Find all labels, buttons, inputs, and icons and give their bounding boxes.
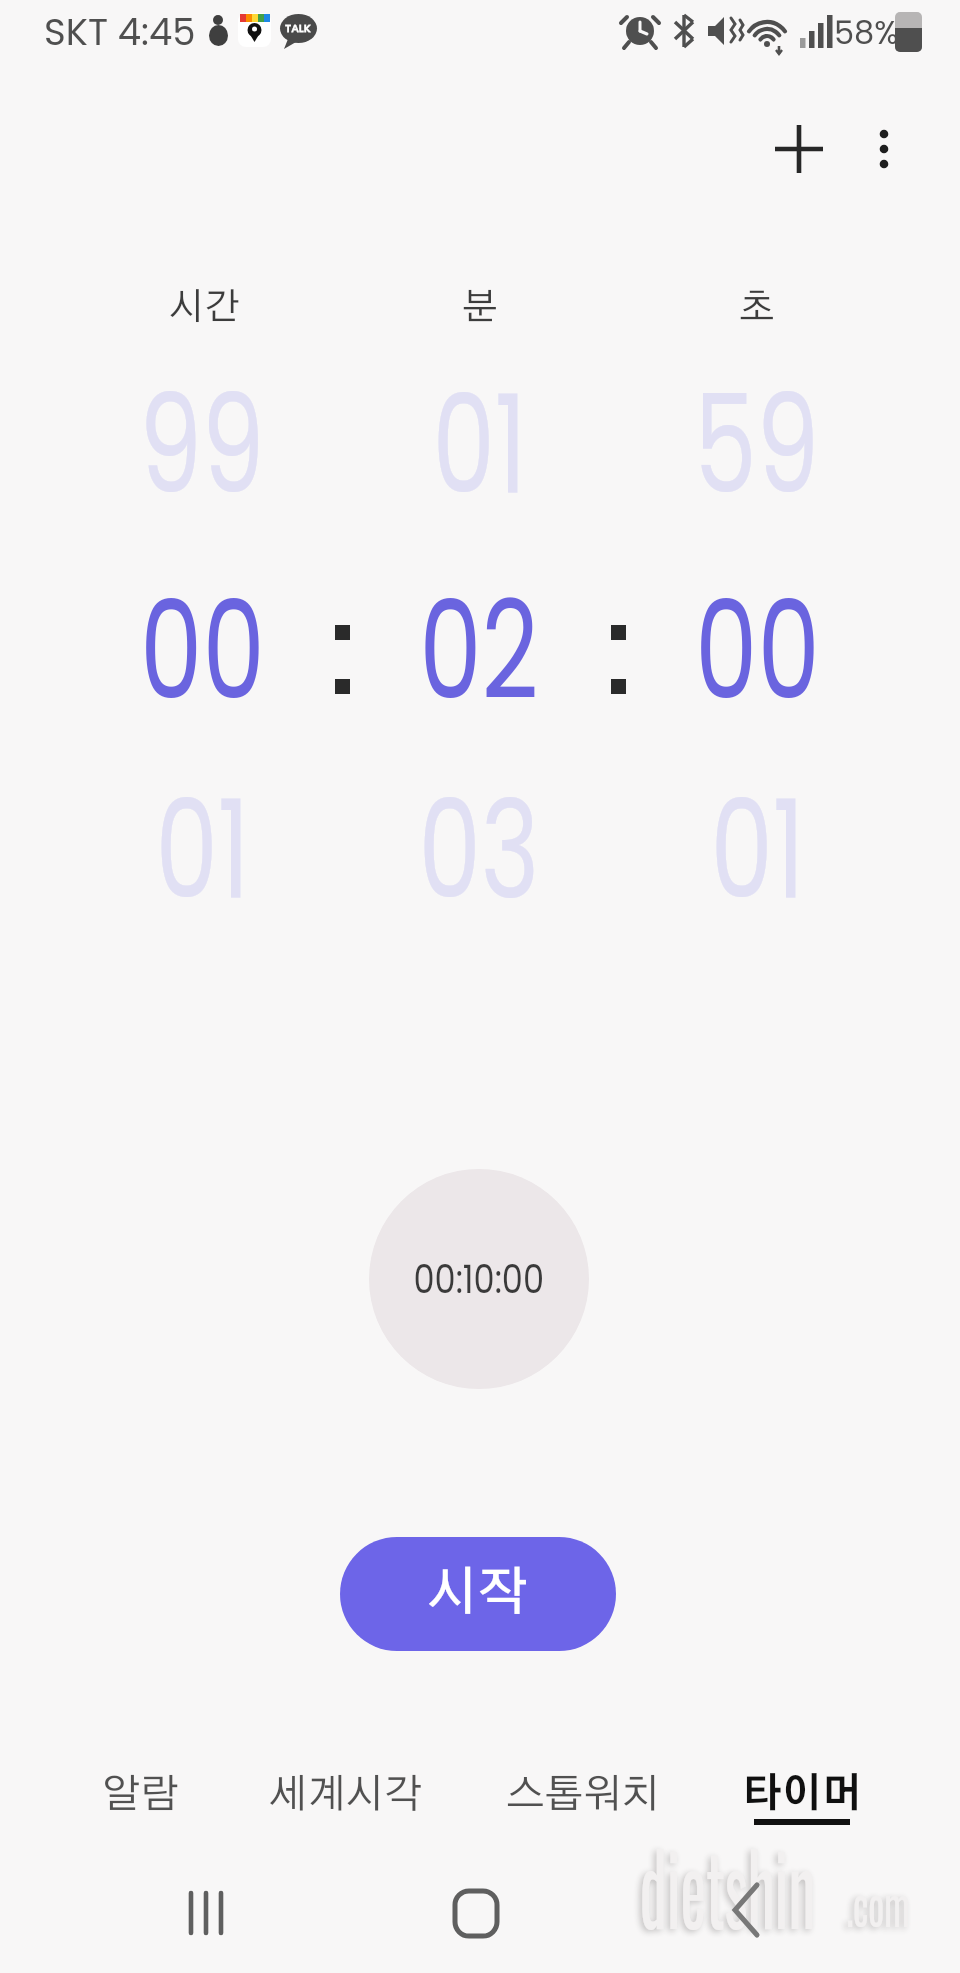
staticText: 시작 <box>427 1568 529 1620</box>
staticText: 00:10:00 <box>413 1251 544 1307</box>
staticText: 01 <box>710 754 805 944</box>
staticText: 타이머 <box>742 1775 862 1815</box>
staticText: 01 <box>155 754 250 944</box>
staticText: TALK <box>285 20 311 35</box>
staticText: dietshin <box>640 1812 815 1957</box>
button[interactable]: 스톱워치 <box>473 1750 693 1840</box>
staticText: 시간 <box>169 289 241 326</box>
button[interactable] <box>844 109 924 189</box>
button[interactable] <box>151 1868 261 1958</box>
button[interactable]: 00 <box>112 555 292 745</box>
button[interactable]: 시작 <box>340 1537 616 1651</box>
staticText: .com <box>846 1865 910 1942</box>
staticText: 알람 <box>102 1775 179 1815</box>
button[interactable]: 02 <box>389 555 569 745</box>
button[interactable]: 세계시각 <box>236 1750 456 1840</box>
button[interactable]: 알람 <box>30 1750 250 1840</box>
staticText: SKT 4:45 <box>44 6 196 58</box>
staticText: 58% <box>834 10 899 55</box>
button[interactable] <box>691 1865 801 1955</box>
staticText: 59 <box>694 349 820 539</box>
button[interactable]: 00 <box>667 555 847 745</box>
staticText: 00 <box>695 555 820 745</box>
button[interactable]: 00:10:00 <box>369 1169 589 1389</box>
staticText: 세계시각 <box>269 1775 423 1815</box>
staticText: 스톱워치 <box>506 1775 660 1815</box>
staticText: 분 <box>462 289 498 326</box>
staticText: 99 <box>139 349 265 539</box>
button[interactable] <box>759 109 839 189</box>
staticText: 03 <box>418 754 540 944</box>
staticText: 00 <box>140 555 265 745</box>
staticText: 02 <box>419 555 539 745</box>
staticText: 01 <box>432 349 527 539</box>
button[interactable] <box>421 1868 531 1958</box>
staticText: 초 <box>739 289 775 326</box>
button[interactable]: 타이머 <box>692 1750 912 1840</box>
